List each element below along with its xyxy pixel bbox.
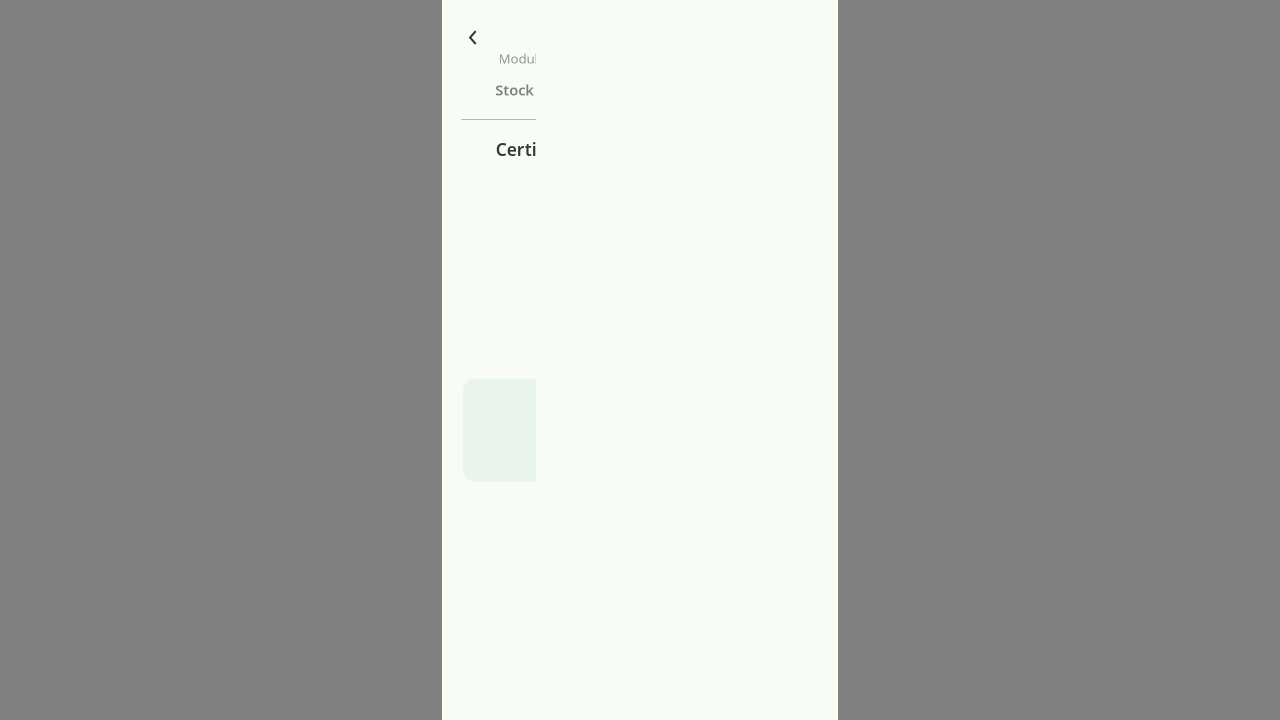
staticText: Certificate of Completion [496,138,710,161]
button[interactable]: Back [458,15,502,59]
staticText: Stock Market Basics [495,80,639,99]
staticText: Module 4 of 6 [499,49,584,67]
